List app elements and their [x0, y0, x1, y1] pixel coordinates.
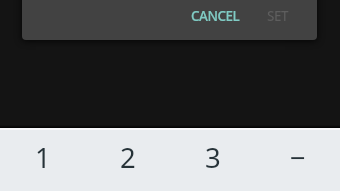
staticText: CANCEL	[191, 7, 240, 25]
button[interactable]: CANCEL	[183, 1, 248, 31]
button[interactable]: SET	[259, 1, 297, 31]
button[interactable]: Key 2	[85, 130, 170, 191]
staticText: −	[290, 139, 306, 176]
staticText: 1	[35, 139, 51, 176]
staticText: 3	[205, 139, 221, 176]
staticText: 2	[120, 139, 136, 176]
button[interactable]: Key 1	[0, 130, 85, 191]
button[interactable]: Minus	[255, 130, 340, 191]
button[interactable]: Key 3	[170, 130, 255, 191]
staticText: SET	[267, 7, 289, 25]
